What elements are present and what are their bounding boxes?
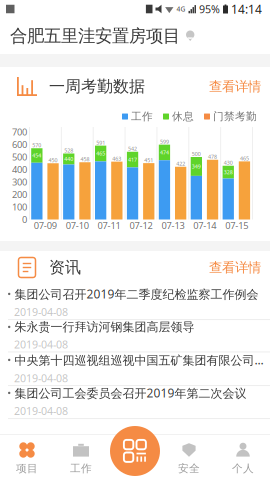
- staticText: 300: [12, 176, 27, 188]
- staticText: 465: [240, 155, 249, 162]
- staticText: 478: [208, 153, 217, 160]
- button[interactable]: 集团公司工会委员会召开2019年第二次会议: [0, 383, 270, 416]
- staticText: 2019-04-08: [14, 305, 68, 319]
- staticText: 工作: [131, 110, 153, 123]
- staticText: 349: [192, 163, 201, 170]
- staticText: 07-13: [161, 219, 184, 232]
- staticText: 528: [64, 147, 73, 154]
- button[interactable]: 扫一扫: [109, 425, 161, 477]
- button[interactable]: 集团公司召开2019年二季度纪检监察工作例会: [0, 284, 270, 317]
- button[interactable]: 查看详情: [209, 259, 261, 276]
- staticText: 600: [12, 138, 27, 151]
- staticText: 700: [12, 126, 27, 138]
- staticText: 合肥五里洼安置房项目: [10, 25, 180, 47]
- staticText: 07-10: [66, 219, 89, 232]
- staticText: 4G: [176, 5, 185, 13]
- button[interactable]: 中央第十四巡视组巡视中国五矿集团有限公司党组工作…: [0, 350, 270, 383]
- staticText: 200: [12, 188, 27, 201]
- staticText: 查看详情: [209, 259, 261, 276]
- staticText: 570: [32, 142, 41, 149]
- staticText: 集团公司工会委员会召开2019年第二次会议: [14, 385, 246, 401]
- staticText: 458: [80, 156, 89, 163]
- staticText: 591: [96, 139, 105, 146]
- staticText: 07-12: [129, 219, 152, 232]
- staticText: 休息: [172, 110, 194, 123]
- staticText: 500: [12, 151, 27, 163]
- staticText: 中央第十四巡视组巡视中国五矿集团有限公司党组工作…: [14, 352, 264, 368]
- staticText: 资讯: [49, 258, 81, 277]
- staticText: 07-14: [193, 219, 216, 232]
- staticText: 599: [160, 138, 169, 145]
- button[interactable]: 查看详情: [209, 78, 261, 95]
- staticText: 项目: [16, 462, 38, 475]
- staticText: 朱永贵一行拜访河钢集团高层领导: [14, 319, 194, 334]
- staticText: 07-11: [98, 219, 121, 232]
- staticText: 417: [128, 156, 137, 163]
- staticText: 450: [49, 157, 58, 164]
- staticText: 2019-04-08: [14, 404, 68, 418]
- staticText: 一周考勤数据: [49, 77, 145, 96]
- staticText: 0: [22, 213, 27, 226]
- staticText: 328: [224, 169, 233, 176]
- staticText: 2019-04-08: [14, 371, 68, 385]
- staticText: 95%: [199, 2, 220, 16]
- staticText: 2019-04-08: [14, 337, 68, 351]
- button[interactable]: 安全: [162, 435, 216, 479]
- staticText: 430: [224, 159, 233, 166]
- staticText: 440: [64, 155, 73, 163]
- staticText: 454: [32, 152, 41, 159]
- staticText: 工作: [70, 462, 92, 475]
- staticText: 100: [12, 201, 27, 213]
- staticText: 465: [96, 150, 105, 157]
- button[interactable]: 朱永贵一行拜访河钢集团高层领导: [0, 317, 270, 350]
- staticText: 07-09: [34, 219, 57, 232]
- staticText: 463: [112, 155, 121, 162]
- button[interactable]: 工作: [54, 435, 108, 479]
- staticText: 474: [160, 149, 169, 156]
- staticText: 07-15: [225, 219, 248, 232]
- staticText: 门禁考勤: [213, 110, 257, 123]
- button[interactable]: 个人: [216, 435, 270, 479]
- staticText: 500: [192, 150, 201, 158]
- staticText: 542: [128, 145, 137, 152]
- staticText: 422: [176, 160, 185, 167]
- staticText: 14:14: [231, 1, 262, 17]
- staticText: 查看详情: [209, 78, 261, 95]
- staticText: 451: [144, 157, 153, 164]
- staticText: 安全: [178, 462, 200, 475]
- staticText: 个人: [232, 462, 254, 475]
- button[interactable]: 项目: [0, 435, 54, 479]
- staticText: 400: [12, 163, 27, 176]
- staticText: 集团公司召开2019年二季度纪检监察工作例会: [14, 286, 258, 302]
